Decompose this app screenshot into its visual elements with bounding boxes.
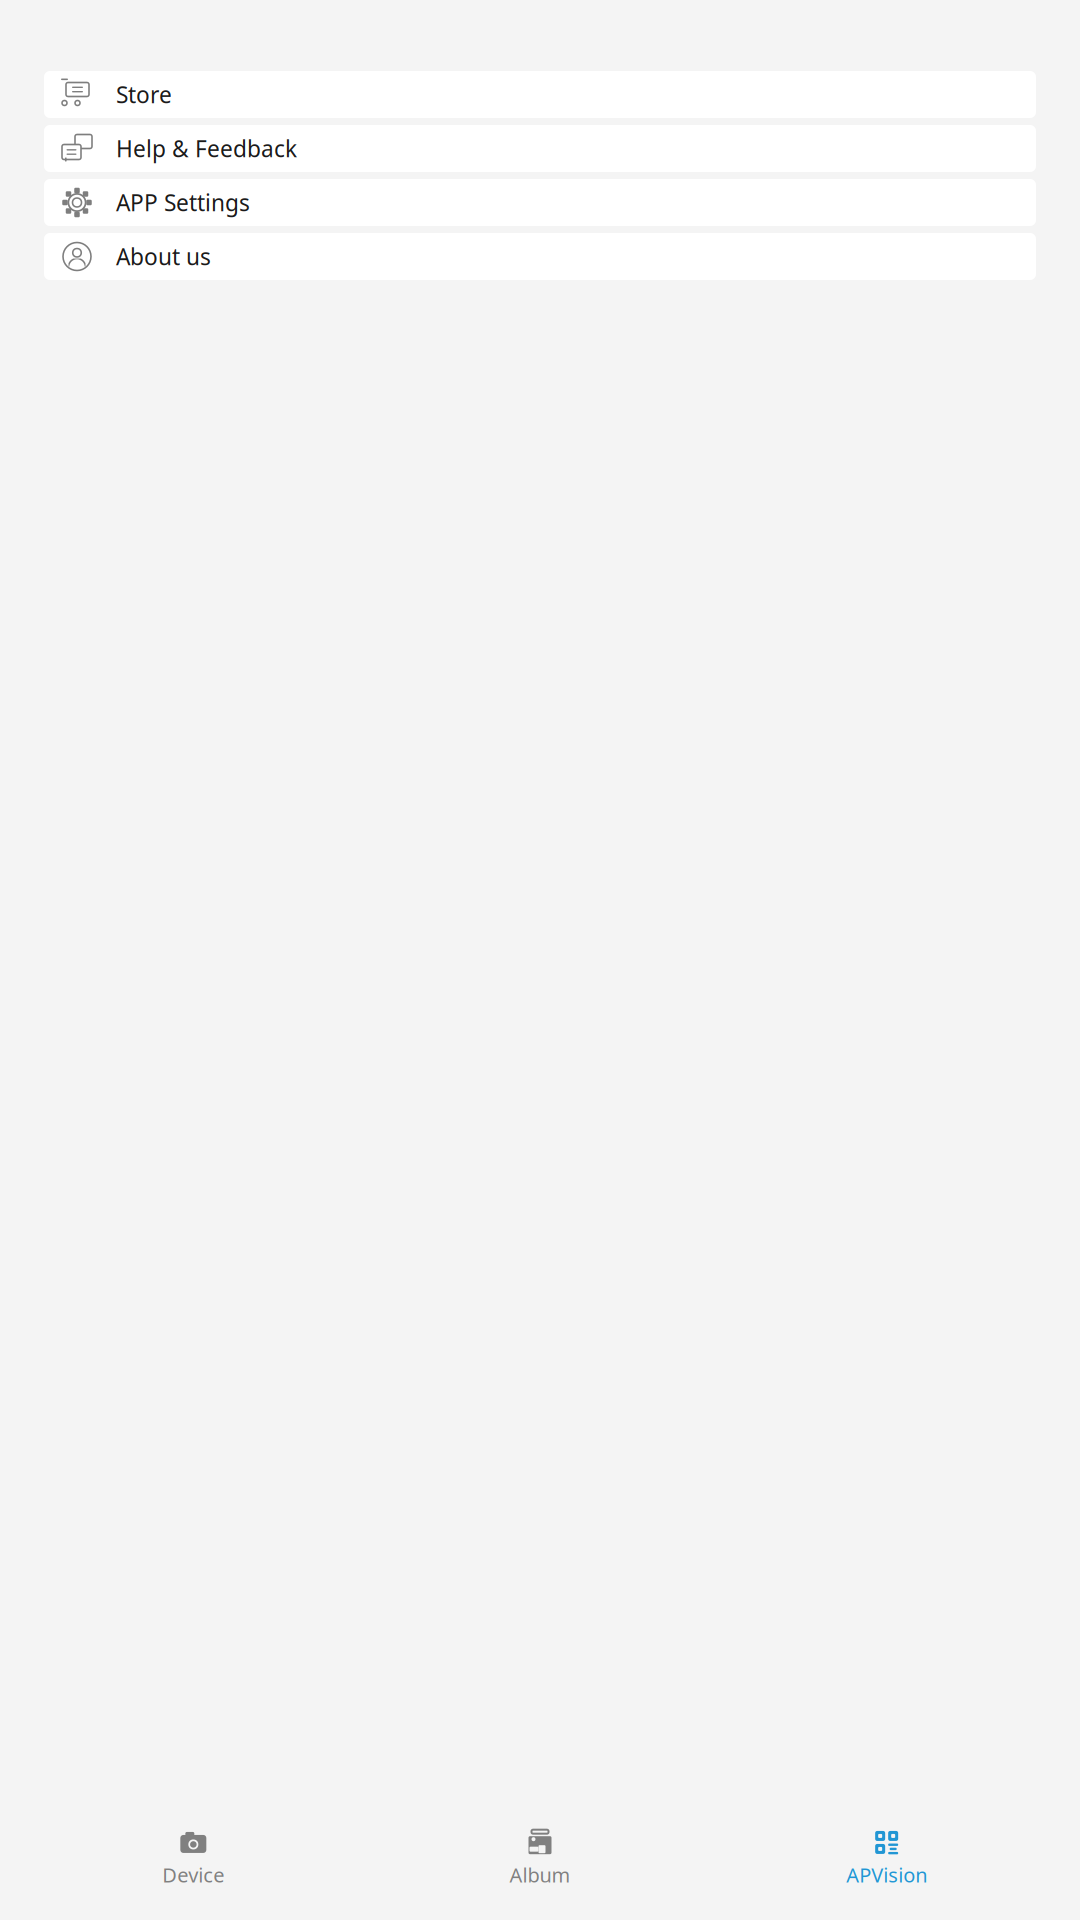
staticText: Device: [162, 1861, 224, 1888]
staticText: APP Settings: [116, 187, 250, 217]
button[interactable]: Album: [367, 1823, 713, 1894]
button[interactable]: APVision: [713, 1823, 1060, 1894]
staticText: Album: [509, 1861, 570, 1888]
staticText: APVision: [846, 1861, 927, 1888]
button[interactable]: About us: [44, 233, 1036, 280]
button[interactable]: Help & Feedback: [44, 125, 1036, 172]
staticText: Help & Feedback: [116, 133, 297, 163]
button[interactable]: Store: [44, 71, 1036, 118]
staticText: Store: [116, 79, 172, 109]
button[interactable]: Device: [20, 1823, 367, 1894]
button[interactable]: APP Settings: [44, 179, 1036, 226]
staticText: About us: [116, 241, 211, 271]
